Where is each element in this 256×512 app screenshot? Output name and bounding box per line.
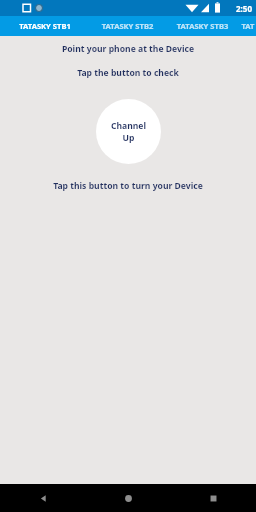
button[interactable]: TATASKY STB2: [90, 16, 165, 36]
staticText: TATASKY STB2: [90, 21, 165, 31]
staticText: Point your phone at the Device: [0, 43, 256, 55]
staticText: Channel Up: [96, 120, 161, 143]
button[interactable]: Recent apps: [171, 484, 256, 512]
button[interactable]: Back: [0, 484, 86, 512]
staticText: TATASKY STB1: [0, 21, 90, 31]
button[interactable]: TAT: [240, 16, 256, 36]
button[interactable]: Channel Up: [96, 99, 161, 164]
staticText: TAT: [240, 21, 256, 31]
staticText: TATASKY STB3: [165, 21, 240, 31]
button[interactable]: TATASKY STB1: [0, 16, 90, 36]
staticText: 2:50: [236, 3, 252, 14]
button[interactable]: TATASKY STB3: [165, 16, 240, 36]
staticText: Tap this button to turn your Device: [0, 180, 256, 192]
button[interactable]: Home: [86, 484, 171, 512]
staticText: Tap the button to check: [0, 67, 256, 79]
